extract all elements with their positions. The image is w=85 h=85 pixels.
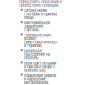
staticText: бактериальное заражение гортани;	[24, 20, 50, 32]
staticText: поражение нервов и нарушение метаболизма…	[24, 73, 56, 85]
staticText: определить показания к проведению операц…	[19, 0, 62, 8]
staticText: туберкулезную форму симптоматической тер…	[24, 33, 57, 48]
staticText: боли при глотании и при разговоре с осип…	[24, 61, 56, 73]
staticText: начальное подозрение на опухоль;	[24, 48, 50, 60]
staticText: затруднение глотания и приема пищи;	[24, 8, 57, 20]
